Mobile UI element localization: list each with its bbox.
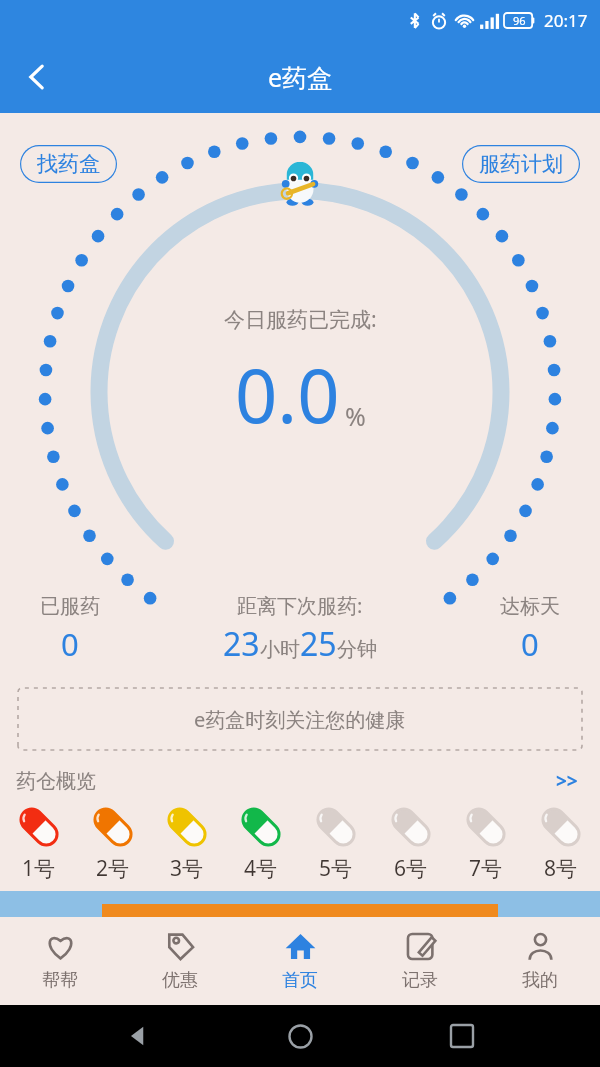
staticText: >>: [556, 768, 578, 794]
button[interactable]: 4号: [224, 800, 298, 883]
staticText: 5号: [319, 854, 353, 883]
staticText: 0.0: [235, 344, 340, 445]
button[interactable]: 服药计划: [462, 145, 580, 183]
staticText: 今日服药已完成:: [224, 305, 377, 334]
button[interactable]: 5号: [298, 800, 373, 883]
staticText: 帮帮: [42, 969, 78, 992]
staticText: 96: [513, 13, 526, 28]
staticText: 4号: [244, 854, 278, 883]
staticText: 我的: [522, 969, 558, 992]
staticText: 1号: [22, 854, 56, 883]
button[interactable]: [0, 891, 600, 917]
staticText: 0: [521, 623, 539, 665]
staticText: 0: [61, 623, 79, 665]
staticText: 小时: [260, 637, 300, 662]
button[interactable]: 3号: [150, 800, 224, 883]
button[interactable]: Home: [276, 1012, 324, 1060]
staticText: 已服药: [40, 594, 100, 619]
button[interactable]: Back: [12, 52, 62, 102]
button[interactable]: 记录: [360, 917, 480, 1005]
staticText: e药盒时刻关注您的健康: [194, 706, 406, 733]
staticText: 3号: [170, 854, 204, 883]
staticText: 达标天: [500, 594, 560, 619]
button[interactable]: >>: [550, 764, 584, 798]
button[interactable]: 找药盒: [20, 145, 117, 183]
staticText: 找药盒: [37, 151, 100, 177]
staticText: %: [345, 399, 366, 433]
button[interactable]: Back: [114, 1012, 162, 1060]
staticText: 6号: [394, 854, 428, 883]
button[interactable]: 7号: [448, 800, 523, 883]
staticText: 优惠: [162, 969, 198, 992]
button[interactable]: 我的: [480, 917, 600, 1005]
button[interactable]: 1号: [2, 800, 76, 883]
staticText: e药盒: [268, 60, 333, 94]
staticText: 25: [300, 622, 337, 666]
button[interactable]: 首页: [240, 917, 360, 1005]
staticText: 8号: [544, 854, 578, 883]
button[interactable]: e药盒时刻关注您的健康: [18, 688, 582, 750]
staticText: 服药计划: [479, 151, 563, 177]
button[interactable]: 8号: [523, 800, 598, 883]
staticText: 药仓概览: [16, 769, 96, 794]
staticText: 首页: [282, 969, 318, 992]
staticText: 分钟: [337, 637, 377, 662]
button[interactable]: Recents: [438, 1012, 486, 1060]
staticText: 2号: [96, 854, 130, 883]
staticText: 记录: [402, 969, 438, 992]
staticText: 23: [223, 622, 260, 666]
button[interactable]: 6号: [373, 800, 448, 883]
staticText: 7号: [469, 854, 503, 883]
button[interactable]: 2号: [76, 800, 150, 883]
button[interactable]: 优惠: [120, 917, 240, 1005]
staticText: 20:17: [544, 9, 588, 32]
button[interactable]: 帮帮: [0, 917, 120, 1005]
staticText: 距离下次服药:: [237, 592, 363, 619]
